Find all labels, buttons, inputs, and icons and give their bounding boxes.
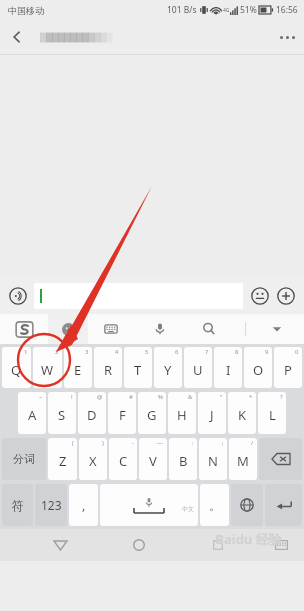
staticText: @ (97, 393, 103, 401)
button[interactable]: Space (100, 484, 198, 526)
button[interactable]: & (168, 392, 196, 434)
staticText: ? (280, 393, 283, 401)
staticText: 8 (235, 348, 239, 356)
button[interactable]: : (169, 438, 197, 480)
staticText: — (157, 439, 164, 447)
button[interactable]: 5 (124, 347, 152, 388)
button[interactable]: Keyboard layout (98, 316, 124, 342)
staticText: B (179, 452, 188, 470)
button[interactable]: 123 (35, 484, 67, 526)
staticText: " (220, 393, 223, 401)
button[interactable]: Search (196, 316, 222, 342)
staticText: 4G (223, 7, 230, 14)
staticText: 0 (295, 348, 299, 356)
staticText: 16:56 (276, 4, 298, 16)
staticText: * (249, 393, 253, 401)
button[interactable]: Title (34, 31, 112, 44)
button[interactable]: 1 (2, 347, 31, 388)
button[interactable]: % (138, 392, 166, 434)
staticText: # (129, 393, 133, 401)
staticText: S (58, 406, 66, 424)
staticText: 6 (175, 348, 179, 356)
button[interactable]: 8 (214, 347, 242, 388)
button[interactable]: Enter (265, 484, 302, 526)
button[interactable]: 0 (274, 347, 302, 388)
button[interactable]: Collapse toolbar (264, 316, 290, 342)
button[interactable]: Back (45, 530, 75, 560)
button[interactable]: ! (48, 392, 76, 434)
button[interactable]: Recents (203, 530, 233, 560)
button[interactable]: Add attachment (273, 283, 299, 309)
staticText: 3 (85, 348, 89, 356)
button[interactable]: Back (0, 20, 34, 54)
staticText: 9 (265, 348, 269, 356)
staticText: 1 (24, 348, 28, 356)
button[interactable]: — (139, 438, 167, 480)
button[interactable]: Home (124, 530, 154, 560)
staticText: ( (72, 439, 74, 447)
button[interactable]: More options (270, 20, 304, 54)
button[interactable]: # (108, 392, 136, 434)
button[interactable]: 4 (94, 347, 122, 388)
button[interactable]: - (109, 438, 137, 480)
staticText: ; (222, 439, 224, 447)
button[interactable]: 7 (184, 347, 212, 388)
button[interactable]: Backspace (259, 438, 302, 480)
staticText: D (87, 406, 97, 424)
staticText: P (284, 361, 292, 379)
button[interactable]: ( (48, 438, 77, 480)
staticText: F (119, 406, 126, 424)
button[interactable]: , (69, 484, 98, 526)
staticText: W (41, 361, 54, 379)
staticText: 符 (12, 498, 24, 513)
staticText: 中文 (182, 505, 194, 513)
staticText: 7 (205, 348, 209, 356)
staticText: I (226, 361, 231, 379)
button[interactable]: * (228, 392, 256, 434)
staticText: C (119, 452, 128, 470)
staticText: T (134, 361, 142, 379)
staticText: : (192, 439, 194, 447)
staticText: 4 (115, 348, 119, 356)
button[interactable]: 9 (244, 347, 272, 388)
staticText: M (237, 452, 249, 470)
button[interactable]: 。 (200, 484, 229, 526)
button[interactable]: Switch language (231, 484, 263, 526)
button[interactable]: ) (79, 438, 107, 480)
staticText: / (251, 439, 254, 447)
button[interactable]: Message input (34, 283, 243, 309)
staticText: 51% (240, 4, 257, 16)
button[interactable]: / (229, 438, 257, 480)
staticText: H (177, 406, 187, 424)
button[interactable]: Emoji panel (48, 314, 88, 344)
staticText: 123 (41, 497, 62, 513)
staticText: O (253, 361, 264, 379)
button[interactable]: 2 (33, 347, 62, 388)
button[interactable]: ; (199, 438, 227, 480)
button[interactable]: 符 (2, 484, 33, 526)
button[interactable]: Voice input (147, 316, 173, 342)
staticText: Z (59, 452, 67, 470)
button[interactable]: Emoji (247, 283, 273, 309)
staticText: U (193, 361, 203, 379)
staticText: Q (11, 361, 22, 379)
button[interactable]: " (198, 392, 226, 434)
button[interactable]: 分词 (2, 438, 46, 480)
button[interactable]: @ (78, 392, 106, 434)
button[interactable]: Sogou input method (0, 314, 48, 344)
button[interactable]: 3 (64, 347, 92, 388)
staticText: L (269, 406, 276, 424)
staticText: V (149, 452, 157, 470)
staticText: ) (102, 439, 104, 447)
button[interactable]: ? (258, 392, 286, 434)
staticText: G (147, 406, 157, 424)
button[interactable]: 6 (154, 347, 182, 388)
button[interactable]: Voice input (5, 283, 31, 309)
button[interactable]: Hide keyboard (268, 532, 294, 558)
staticText: J (210, 406, 214, 424)
staticText: 5 (145, 348, 149, 356)
staticText: X (89, 452, 97, 470)
staticText: 分词 (13, 452, 35, 466)
button[interactable]: ~ (18, 392, 46, 434)
staticText: A (28, 406, 37, 424)
